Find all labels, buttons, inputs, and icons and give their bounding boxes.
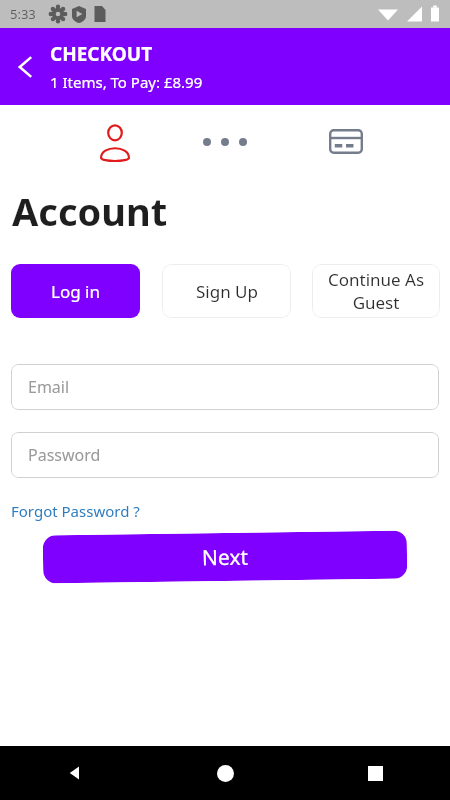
staticText: Account <box>12 185 168 237</box>
button[interactable]: Next <box>43 530 407 584</box>
button[interactable]: Log in <box>11 264 140 318</box>
button[interactable]: Email <box>11 364 439 410</box>
staticText: Continue As Guest <box>318 268 434 314</box>
button[interactable]: Password <box>11 432 439 478</box>
staticText: Next <box>202 543 249 572</box>
staticText: Log in <box>51 280 100 303</box>
button[interactable]: Home <box>150 746 300 800</box>
button[interactable]: Payment step <box>322 117 370 165</box>
staticText: 1 Items, To Pay: £8.99 <box>50 72 203 92</box>
button[interactable]: Continue As Guest <box>312 264 440 318</box>
staticText: CHECKOUT <box>50 41 153 67</box>
button[interactable]: Recent apps <box>300 746 450 800</box>
button[interactable]: Account step <box>88 114 142 168</box>
staticText: 5:33 <box>10 5 36 23</box>
staticText: Password <box>28 444 101 466</box>
staticText: Sign Up <box>196 280 258 303</box>
staticText: Email <box>28 376 70 398</box>
button[interactable]: Forgot Password ? <box>11 501 140 521</box>
button[interactable]: Back <box>0 746 150 800</box>
staticText: Forgot Password ? <box>11 501 140 521</box>
button[interactable]: Back <box>4 45 48 89</box>
button[interactable]: Sign Up <box>162 264 291 318</box>
